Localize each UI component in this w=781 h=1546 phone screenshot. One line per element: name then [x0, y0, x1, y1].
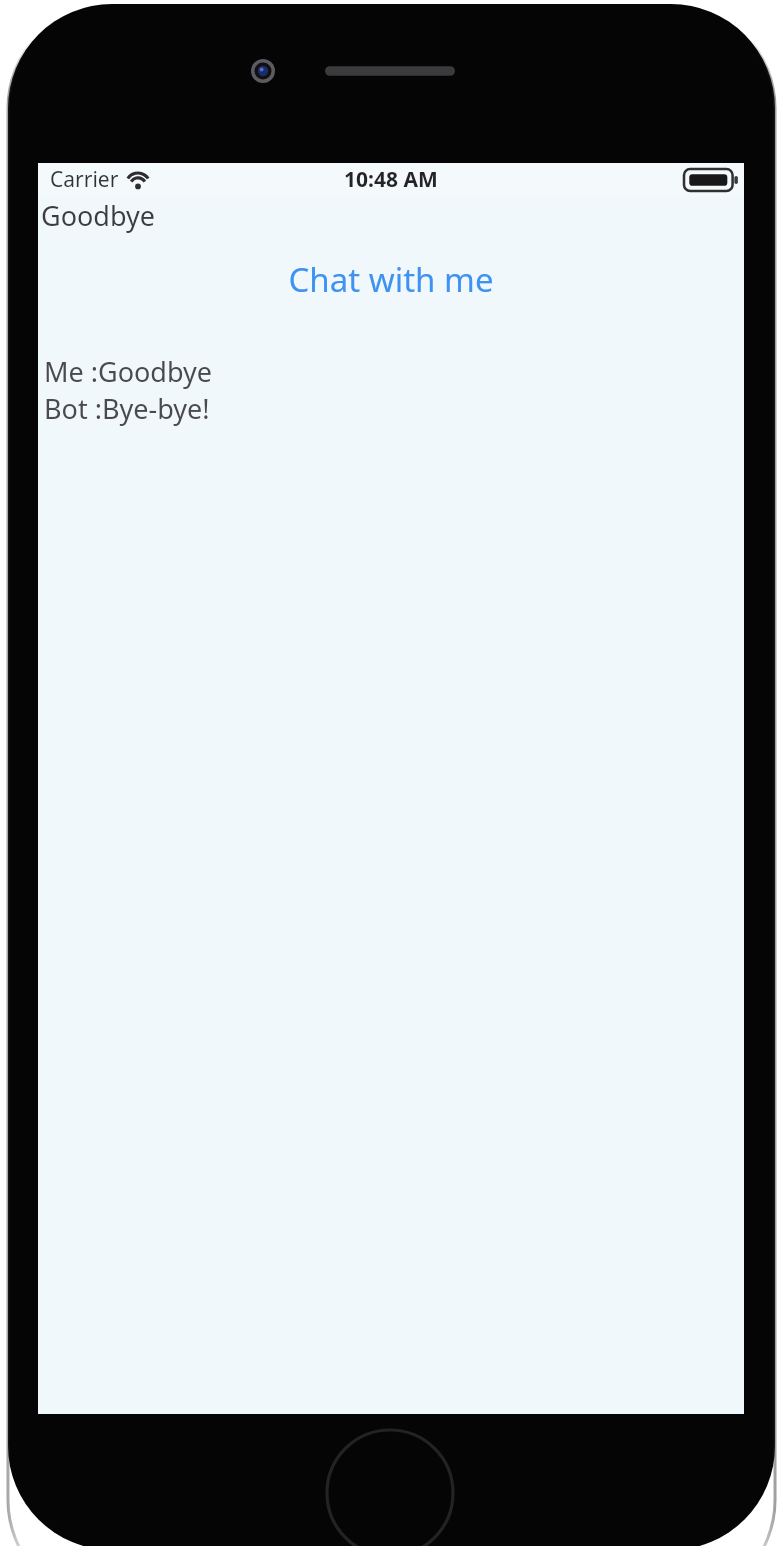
- staticText: Me :Goodbye: [44, 353, 212, 390]
- staticText: Chat with me: [38, 257, 744, 302]
- staticText: Carrier: [50, 165, 119, 194]
- staticText: 10:48 AM: [344, 165, 438, 194]
- staticText: Bot :Bye-bye!: [44, 390, 210, 427]
- staticText: Goodbye: [41, 197, 155, 234]
- button[interactable]: Chat with me: [38, 257, 744, 302]
